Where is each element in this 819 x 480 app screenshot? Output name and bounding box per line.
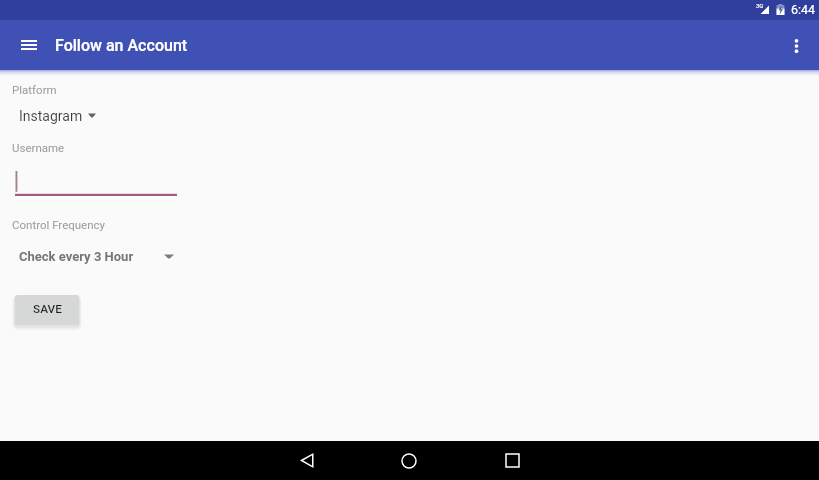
button[interactable]: Home — [389, 441, 429, 480]
button[interactable]: Open navigation drawer — [13, 29, 45, 61]
button[interactable]: Instagram — [12, 108, 184, 124]
button[interactable]: SAVE — [15, 295, 79, 325]
button[interactable]: Check every 3 Hour — [12, 249, 184, 264]
staticText: Check every 3 Hour — [19, 249, 134, 264]
staticText: Follow an Account — [55, 36, 188, 55]
button[interactable]: More options — [776, 27, 812, 63]
staticText: 3G — [756, 2, 764, 9]
button[interactable] — [15, 171, 177, 196]
button[interactable]: Back — [287, 441, 327, 480]
staticText: Control Frequency — [12, 218, 106, 231]
staticText: Instagram — [19, 108, 83, 124]
button[interactable]: Recent apps — [492, 441, 532, 480]
staticText: Platform — [12, 83, 57, 96]
staticText: SAVE — [33, 302, 62, 316]
staticText: Username — [12, 141, 65, 154]
staticText: 6:44 — [791, 2, 816, 17]
